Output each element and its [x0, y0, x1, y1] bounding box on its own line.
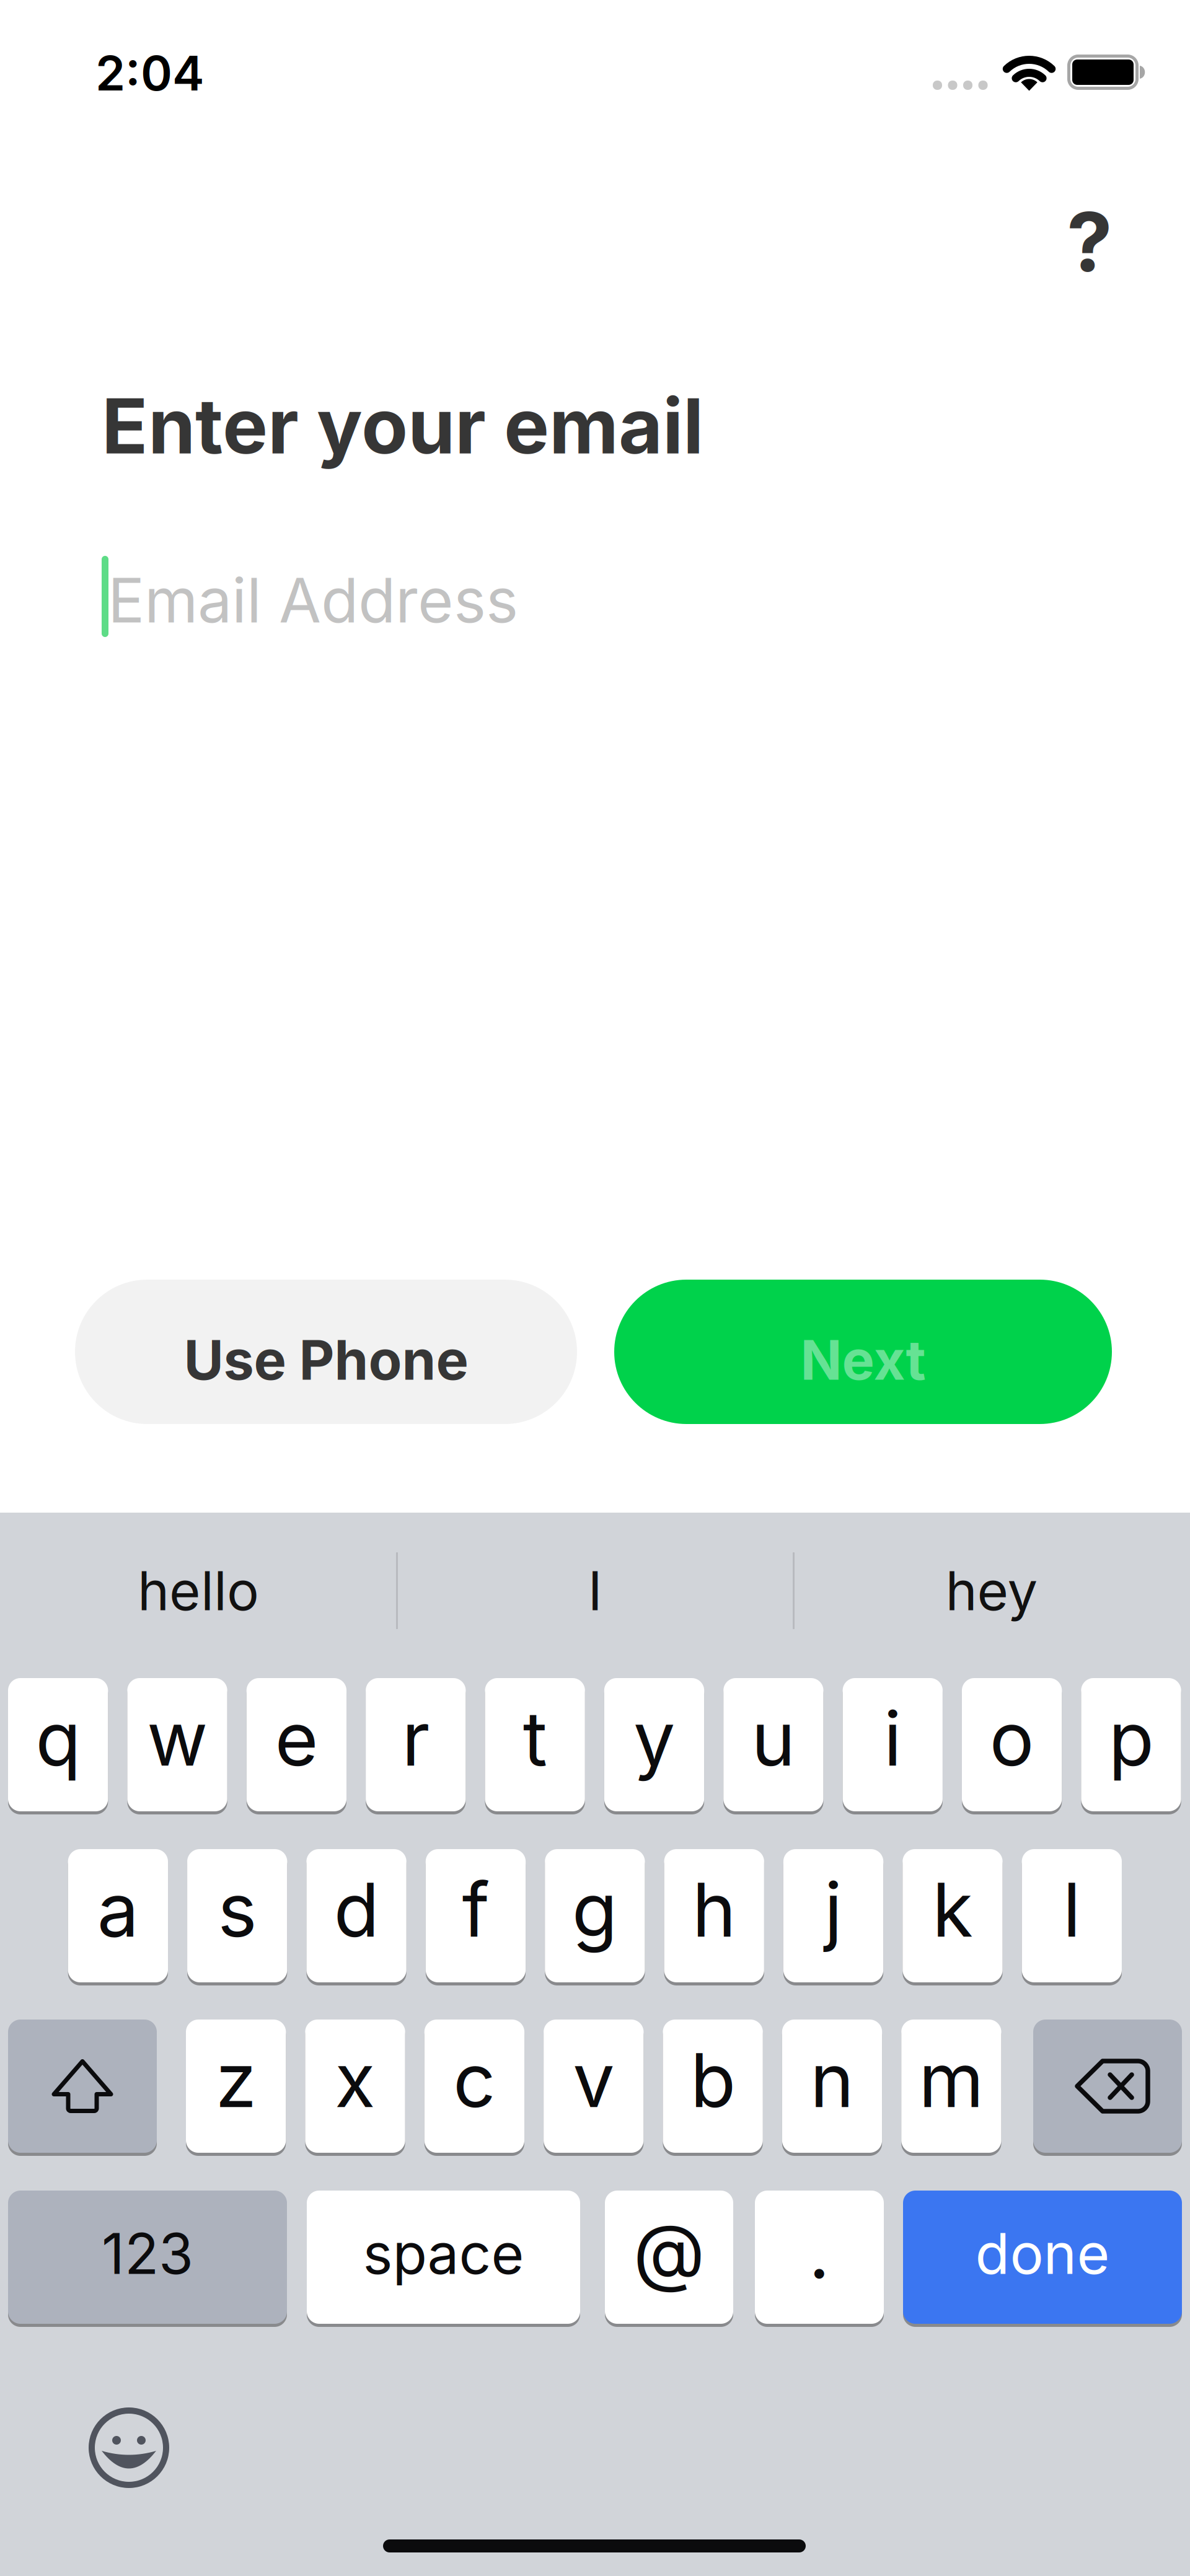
staticText: p — [1108, 1694, 1154, 1783]
button[interactable]: g — [545, 1849, 645, 1982]
button[interactable]: d — [306, 1849, 406, 1982]
button[interactable]: v — [544, 2020, 644, 2153]
staticText: w — [147, 1694, 208, 1783]
staticText: Use Phone — [184, 1327, 468, 1393]
staticText: g — [572, 1865, 618, 1955]
staticText: j — [824, 1865, 842, 1955]
staticText: ? — [1067, 192, 1113, 291]
staticText: d — [334, 1865, 379, 1955]
staticText: v — [573, 2035, 614, 2125]
button[interactable]: h — [664, 1849, 764, 1982]
button[interactable]: n — [782, 2020, 882, 2153]
staticText: k — [932, 1865, 973, 1955]
staticText: Email Address — [108, 563, 518, 637]
button[interactable]: e — [246, 1678, 346, 1811]
button[interactable]: u — [723, 1678, 823, 1811]
button[interactable]: Shift — [8, 2020, 157, 2153]
staticText: q — [35, 1694, 81, 1783]
staticText: Enter your email — [102, 380, 703, 472]
staticText: Next — [800, 1327, 926, 1393]
staticText: I — [588, 1558, 602, 1623]
staticText: b — [690, 2035, 735, 2125]
staticText: i — [884, 1694, 902, 1783]
button[interactable]: x — [305, 2020, 405, 2153]
button[interactable]: done — [903, 2191, 1182, 2324]
staticText: s — [218, 1865, 257, 1955]
staticText: c — [453, 2035, 496, 2125]
button[interactable]: o — [962, 1678, 1062, 1811]
button[interactable]: j — [783, 1849, 883, 1982]
staticText: hey — [945, 1558, 1038, 1623]
staticText: hello — [138, 1558, 259, 1623]
staticText: m — [919, 2035, 984, 2125]
button[interactable]: hey — [806, 1535, 1178, 1646]
staticText: 123 — [102, 2219, 193, 2287]
button[interactable]: b — [663, 2020, 763, 2153]
staticText: x — [335, 2035, 376, 2125]
button[interactable]: @ — [605, 2191, 733, 2324]
button[interactable]: . — [755, 2191, 884, 2324]
staticText: r — [402, 1694, 430, 1783]
staticText: t — [523, 1694, 547, 1783]
button[interactable]: space — [307, 2191, 580, 2324]
staticText: o — [990, 1694, 1034, 1783]
staticText: space — [363, 2219, 524, 2287]
staticText: y — [633, 1694, 675, 1783]
button[interactable]: r — [366, 1678, 466, 1811]
button[interactable]: i — [843, 1678, 943, 1811]
button[interactable]: m — [901, 2020, 1001, 2153]
button[interactable]: z — [186, 2020, 286, 2153]
staticText: @ — [633, 2206, 705, 2296]
button[interactable]: t — [485, 1678, 585, 1811]
button[interactable]: Help — [1028, 180, 1152, 304]
staticText: z — [215, 2035, 256, 2125]
staticText: l — [1063, 1865, 1081, 1955]
button[interactable]: Delete — [1033, 2020, 1182, 2153]
button[interactable]: y — [604, 1678, 704, 1811]
button[interactable]: s — [187, 1849, 287, 1982]
staticText: 2:04 — [95, 44, 205, 102]
button[interactable]: a — [68, 1849, 168, 1982]
staticText: a — [97, 1865, 139, 1955]
button[interactable]: c — [424, 2020, 524, 2153]
button[interactable]: w — [127, 1678, 227, 1811]
button[interactable]: hello — [12, 1535, 384, 1646]
button[interactable]: p — [1081, 1678, 1181, 1811]
button[interactable]: I — [409, 1535, 781, 1646]
staticText: e — [275, 1694, 318, 1783]
staticText: u — [751, 1694, 795, 1783]
button[interactable]: l — [1022, 1849, 1122, 1982]
button[interactable]: k — [903, 1849, 1003, 1982]
staticText: done — [975, 2219, 1110, 2287]
staticText: f — [462, 1865, 489, 1955]
staticText: . — [809, 2206, 830, 2296]
staticText: n — [810, 2035, 854, 2125]
button[interactable]: f — [426, 1849, 526, 1982]
button[interactable]: 123 — [8, 2191, 287, 2324]
button[interactable]: Use Phone — [75, 1280, 577, 1424]
button[interactable]: q — [8, 1678, 108, 1811]
staticText: h — [692, 1865, 736, 1955]
button[interactable]: Email Address — [0, 0, 410, 81]
button[interactable]: Next — [614, 1280, 1112, 1424]
button[interactable]: Emoji — [89, 2407, 169, 2488]
